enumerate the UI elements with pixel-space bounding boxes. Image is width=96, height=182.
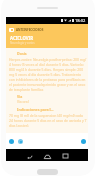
button[interactable]: More options	[79, 137, 87, 145]
staticText: ACICLOVIR	[10, 35, 34, 41]
staticText: Indicaciones para l...	[17, 107, 54, 112]
button[interactable]: Share	[16, 137, 24, 145]
staticText: 70 mg (8 ml) de la suspension (40 mg/ml)…	[9, 113, 87, 128]
staticText: Via	[17, 94, 23, 99]
button[interactable]: Recent apps	[59, 150, 71, 162]
staticText: Via oral	[17, 99, 29, 103]
staticText: 18:02	[75, 18, 86, 23]
button[interactable]: Bookmark	[7, 137, 15, 145]
button[interactable]: Home	[41, 150, 53, 162]
button[interactable]: Back	[24, 150, 36, 162]
staticText: ANTIINFECCIOSOS	[16, 28, 44, 32]
button[interactable]: Menu	[9, 28, 44, 32]
other: Menu	[9, 28, 14, 32]
staticText: Dosis	[17, 51, 27, 56]
staticText: Neurologia y varios	[10, 41, 35, 45]
staticText: Herpes zoster: Neuralgia postherpetica: …	[9, 57, 87, 92]
